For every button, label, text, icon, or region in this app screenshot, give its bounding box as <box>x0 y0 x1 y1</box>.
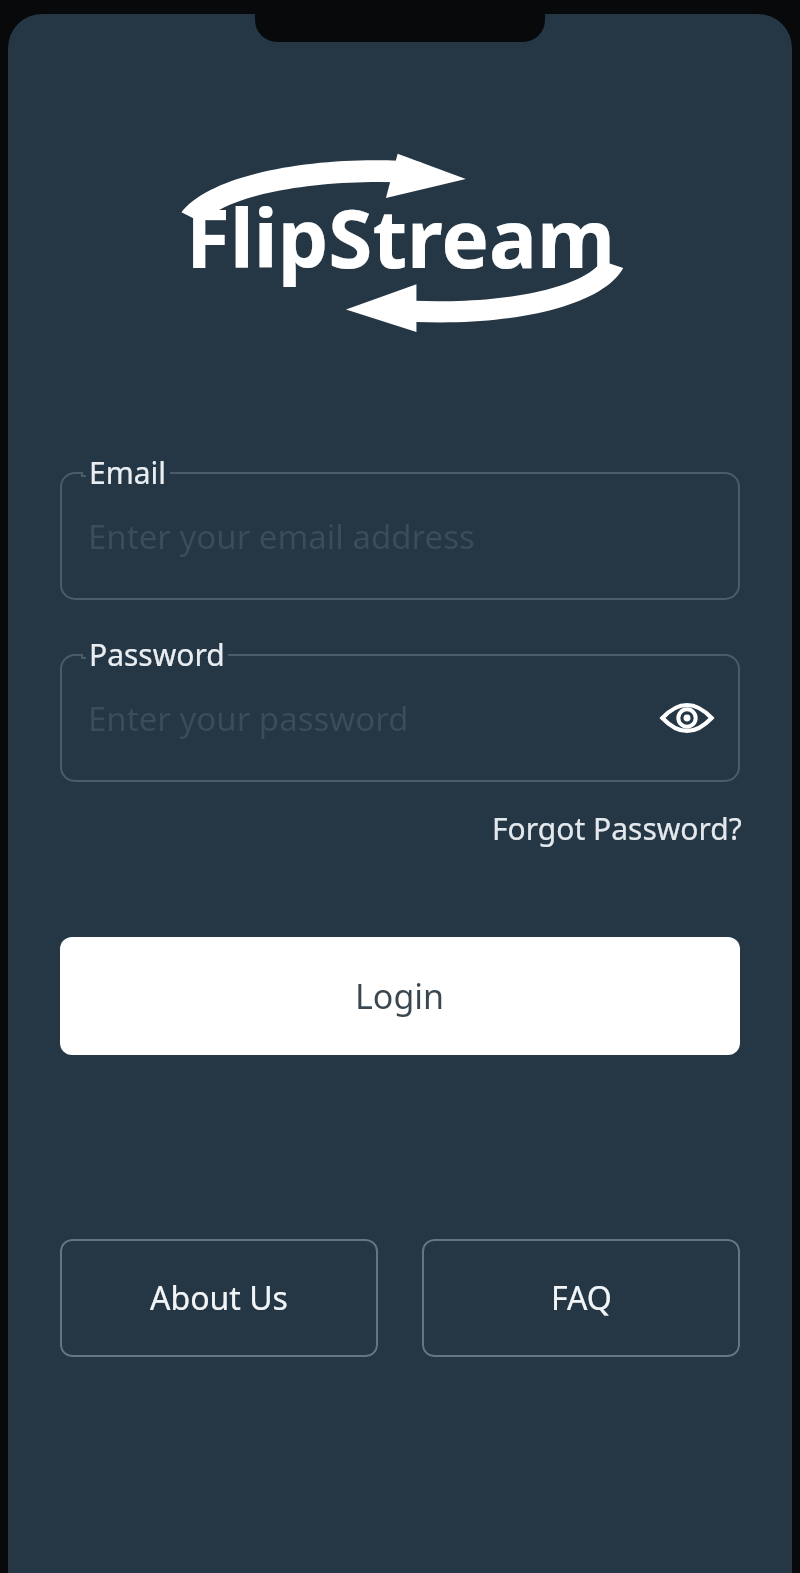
button[interactable]: Forgot Password? <box>488 802 746 855</box>
staticText: Enter your password <box>88 696 409 741</box>
staticText: Login <box>355 973 445 1019</box>
button[interactable]: About Us <box>60 1239 378 1357</box>
button[interactable]: Email <box>60 472 740 600</box>
staticText: Email <box>89 452 167 493</box>
staticText: Password <box>89 634 225 675</box>
staticText: Enter your email address <box>88 514 475 559</box>
staticText: FAQ <box>551 1276 612 1320</box>
button[interactable]: FAQ <box>422 1239 740 1357</box>
button[interactable]: Show password <box>654 685 720 751</box>
button[interactable]: Login <box>60 937 740 1055</box>
staticText: Forgot Password? <box>492 808 742 849</box>
staticText: FlipStream <box>186 182 615 291</box>
staticText: About Us <box>150 1276 288 1320</box>
button[interactable]: Password <box>60 654 740 782</box>
